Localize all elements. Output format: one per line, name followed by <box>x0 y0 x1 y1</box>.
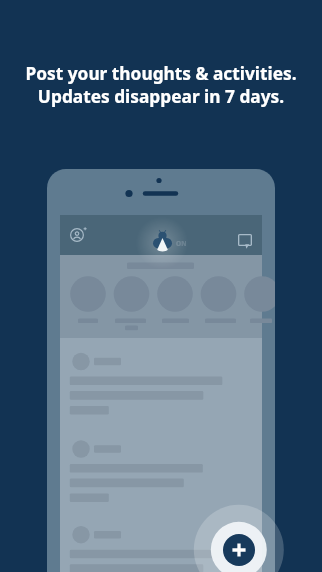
button[interactable]: Profile <box>70 228 84 242</box>
button[interactable]: Create post <box>223 534 255 566</box>
button[interactable]: Messages <box>238 234 252 246</box>
staticText: Post your thoughts & activities. Updates… <box>0 62 322 108</box>
staticText: ON <box>176 239 187 248</box>
